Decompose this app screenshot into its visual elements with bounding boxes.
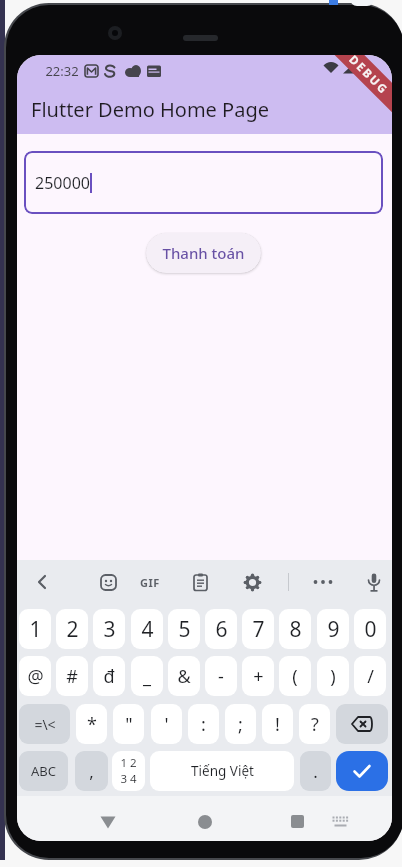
staticText: 250000 (35, 172, 90, 194)
button[interactable]: Thanh toán (146, 233, 261, 273)
staticText: # (66, 664, 78, 689)
staticText: 2 (66, 615, 79, 644)
staticText: ABC (31, 762, 56, 780)
button[interactable]: @ (19, 656, 51, 696)
staticText: =\< (34, 715, 56, 734)
staticText: + (253, 664, 264, 689)
button[interactable]: 1 (19, 609, 51, 649)
staticText: , (89, 760, 94, 783)
staticText: ! (275, 712, 280, 737)
staticText: _ (143, 664, 151, 689)
button[interactable]: 4 (131, 609, 163, 649)
button[interactable]: 5 (168, 609, 200, 649)
button[interactable]: , (75, 751, 108, 791)
button[interactable] (336, 751, 388, 791)
button[interactable] (244, 574, 261, 591)
button[interactable]: 1 2 (112, 751, 145, 791)
button[interactable]: 3 (93, 609, 125, 649)
button[interactable]: 2 (56, 609, 88, 649)
button[interactable] (367, 573, 381, 592)
staticText: đ (103, 664, 115, 689)
button[interactable] (332, 816, 349, 828)
staticText: Tiếng Việt (191, 762, 254, 780)
staticText: 5 (178, 615, 191, 644)
button[interactable]: . (300, 751, 331, 791)
staticText: ( (292, 664, 298, 689)
button[interactable]: / (354, 656, 386, 696)
button[interactable]: & (168, 656, 200, 696)
button[interactable]: _ (131, 656, 163, 696)
button[interactable]: GIF (140, 575, 160, 590)
button[interactable]: 8 (279, 609, 311, 649)
button[interactable] (35, 574, 49, 590)
button[interactable]: ) (317, 656, 349, 696)
button[interactable] (336, 704, 388, 744)
staticText: " (125, 712, 133, 737)
button[interactable]: - (205, 656, 237, 696)
button[interactable] (100, 574, 117, 591)
staticText: * (87, 712, 97, 737)
staticText: @ (27, 664, 44, 689)
button[interactable]: " (113, 704, 144, 744)
staticText: 22:32 (45, 62, 79, 80)
button[interactable]: ? (299, 704, 330, 744)
staticText: - (218, 664, 224, 689)
staticText: Thanh toán (162, 243, 245, 263)
button[interactable] (291, 815, 304, 828)
staticText: . (313, 760, 318, 783)
button[interactable]: : (188, 704, 219, 744)
staticText: 3 4 (120, 771, 137, 787)
button[interactable]: 6 (205, 609, 237, 649)
button[interactable]: 7 (242, 609, 274, 649)
staticText: : (201, 712, 206, 737)
staticText: 7 (252, 615, 265, 644)
button[interactable]: # (56, 656, 88, 696)
button[interactable]: đ (93, 656, 125, 696)
button[interactable] (198, 815, 212, 829)
button[interactable]: 9 (317, 609, 349, 649)
button[interactable]: ' (151, 704, 182, 744)
staticText: & (177, 664, 191, 689)
staticText: 4 (141, 615, 154, 644)
button[interactable]: 0 (354, 609, 386, 649)
button[interactable]: ! (262, 704, 293, 744)
button[interactable]: Tiếng Việt (150, 751, 294, 791)
button[interactable]: =\< (19, 704, 70, 744)
staticText: DEBUG (345, 55, 392, 98)
button[interactable] (313, 580, 333, 584)
button[interactable]: + (242, 656, 274, 696)
staticText: Flutter Demo Home Page (31, 96, 269, 123)
button[interactable]: * (76, 704, 107, 744)
staticText: ; (238, 712, 243, 737)
staticText: ) (330, 664, 336, 689)
staticText: / (367, 664, 374, 689)
button[interactable] (193, 573, 208, 591)
button[interactable]: ; (225, 704, 256, 744)
staticText: 1 2 (120, 755, 137, 771)
staticText: 8 (289, 615, 302, 644)
staticText: ' (164, 712, 169, 737)
button[interactable]: ABC (19, 751, 68, 791)
staticText: 1 (29, 615, 42, 644)
button[interactable]: 250000 (24, 151, 383, 214)
staticText: 3 (103, 615, 116, 644)
staticText: 6 (215, 615, 228, 644)
staticText: 0 (364, 615, 377, 644)
staticText: ? (311, 712, 319, 737)
staticText: 9 (327, 615, 340, 644)
button[interactable] (100, 816, 116, 829)
button[interactable]: ( (279, 656, 311, 696)
